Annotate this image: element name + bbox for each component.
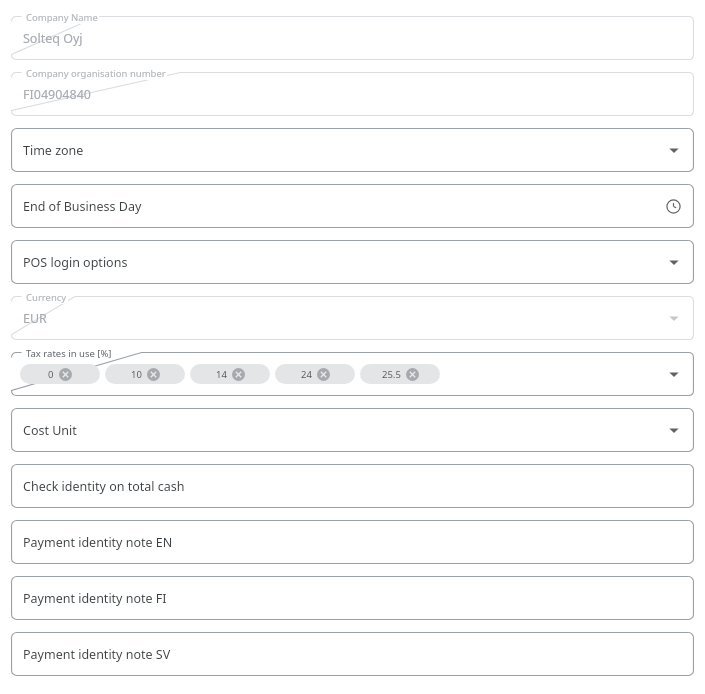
staticText: End of Business Day — [23, 198, 666, 215]
button[interactable]: Remove 25.5 — [406, 368, 419, 381]
button[interactable]: Remove 24 — [317, 368, 330, 381]
button[interactable]: Remove 14 — [232, 368, 245, 381]
button[interactable]: 24 — [275, 364, 355, 384]
button[interactable]: End of Business Day — [11, 184, 694, 228]
button[interactable]: Open cost unit list — [667, 423, 681, 437]
staticText: EUR — [23, 310, 667, 327]
staticText: Solteq Oyj — [23, 30, 681, 47]
button[interactable]: Tax rates in use [%] — [11, 352, 694, 396]
button[interactable]: Open time zone list — [667, 143, 681, 157]
button[interactable]: Open tax rates list — [667, 367, 681, 381]
staticText: Company Name — [26, 11, 98, 24]
button[interactable]: Open POS login options — [667, 255, 681, 269]
button[interactable]: Company Name — [11, 16, 694, 60]
staticText: Payment identity note EN — [23, 534, 681, 551]
button[interactable]: Remove 0 — [59, 368, 72, 381]
button[interactable]: POS login options — [11, 240, 694, 284]
button[interactable]: Remove 10 — [147, 368, 160, 381]
staticText: 0 — [48, 368, 54, 381]
button[interactable]: Payment identity note SV — [11, 632, 694, 676]
staticText: Payment identity note SV — [23, 646, 681, 663]
button[interactable]: Company organisation number — [11, 72, 694, 116]
button[interactable]: Check identity on total cash — [11, 464, 694, 508]
staticText: Company organisation number — [26, 67, 166, 80]
staticText: Payment identity note FI — [23, 590, 681, 607]
staticText: FI04904840 — [23, 86, 681, 103]
button[interactable]: Cost Unit — [11, 408, 694, 452]
button[interactable]: Currency — [11, 296, 694, 340]
staticText: 14 — [216, 368, 227, 381]
button[interactable]: 10 — [105, 364, 185, 384]
staticText: Tax rates in use [%] — [26, 347, 112, 360]
button[interactable]: Payment identity note EN — [11, 520, 694, 564]
staticText: Currency — [26, 291, 67, 304]
button[interactable]: Pick time — [666, 199, 681, 214]
button[interactable]: 14 — [190, 364, 270, 384]
button[interactable]: 25.5 — [360, 364, 440, 384]
staticText: Cost Unit — [23, 422, 667, 439]
staticText: 24 — [301, 368, 312, 381]
staticText: Check identity on total cash — [23, 478, 681, 495]
button[interactable]: Time zone — [11, 128, 694, 172]
staticText: POS login options — [23, 254, 667, 271]
staticText: 25.5 — [382, 368, 401, 381]
button[interactable]: 0 — [20, 364, 100, 384]
staticText: Time zone — [23, 142, 667, 159]
staticText: 10 — [131, 368, 142, 381]
button[interactable]: Payment identity note FI — [11, 576, 694, 620]
